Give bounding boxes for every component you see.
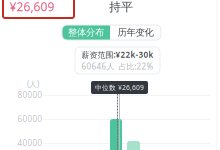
- staticText: 60646人 占比:22%: [81, 61, 153, 72]
- staticText: 整体分布: [68, 27, 104, 38]
- staticText: 中位数 ¥26,609: [95, 83, 144, 92]
- staticText: ¥26,609: [9, 0, 54, 14]
- staticText: (人): [27, 79, 39, 89]
- staticText: 薪资范围:¥22k-30k: [81, 49, 153, 60]
- button[interactable]: 整体分布: [62, 25, 110, 40]
- staticText: 60000: [17, 114, 42, 124]
- staticText: 80000: [17, 90, 42, 100]
- staticText: 持平: [109, 0, 133, 14]
- staticText: 40000: [17, 138, 42, 148]
- button[interactable]: 历年变化: [110, 25, 161, 40]
- staticText: 历年变化: [117, 27, 153, 38]
